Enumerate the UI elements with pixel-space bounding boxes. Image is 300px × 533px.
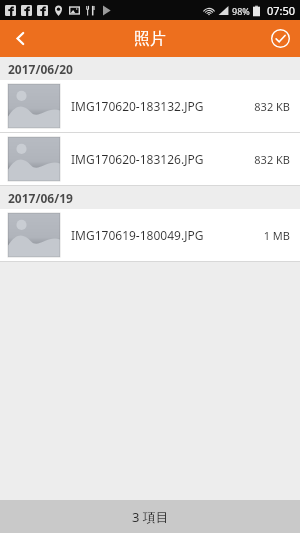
button[interactable]: IMG170619-180049.JPG (0, 209, 300, 262)
staticText: 98% (232, 5, 250, 17)
staticText: 07:50 (267, 3, 296, 18)
button[interactable]: Back (0, 20, 40, 57)
button[interactable]: IMG170620-183126.JPG (0, 133, 300, 186)
staticText: 2017/06/19 (8, 190, 73, 206)
staticText: 1 MB (263, 228, 290, 243)
staticText: 3 項目 (132, 508, 169, 526)
staticText: IMG170620-183132.JPG (71, 98, 250, 114)
staticText: IMG170619-180049.JPG (71, 227, 259, 243)
staticText: 照片 (134, 29, 166, 49)
button[interactable]: IMG170620-183132.JPG (0, 80, 300, 133)
staticText: 832 KB (254, 152, 290, 167)
button[interactable]: Confirm selection (260, 20, 300, 57)
staticText: 832 KB (254, 99, 290, 114)
staticText: 2017/06/20 (8, 61, 73, 77)
staticText: IMG170620-183126.JPG (71, 151, 250, 167)
